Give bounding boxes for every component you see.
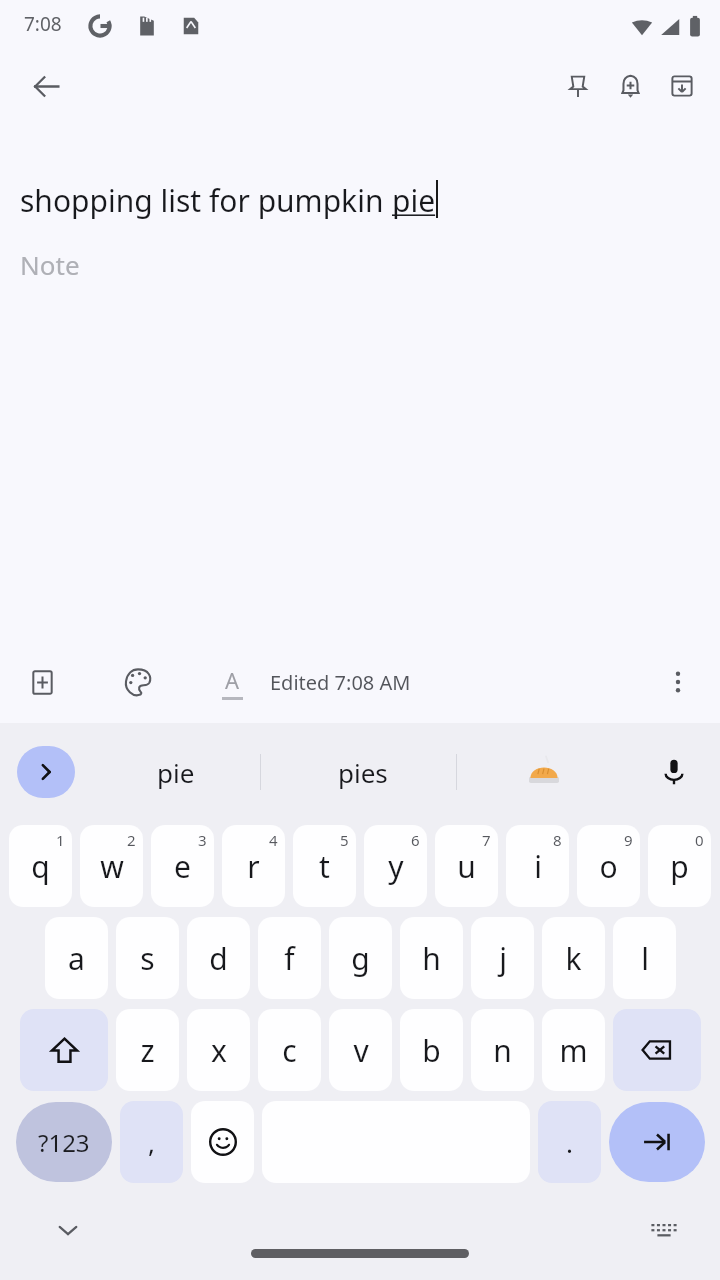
staticText: 2 <box>127 830 136 850</box>
button[interactable]: Emoji <box>191 1101 254 1183</box>
button[interactable]: f <box>258 917 321 999</box>
button[interactable]: Pin note <box>552 60 604 112</box>
staticText: c <box>282 1030 297 1071</box>
staticText: w <box>100 846 124 887</box>
staticText: v <box>353 1030 369 1071</box>
staticText: pie <box>157 755 195 790</box>
staticText: y <box>388 846 404 887</box>
staticText: u <box>457 846 476 887</box>
staticText: A <box>225 665 240 695</box>
button[interactable]: Back <box>22 62 70 110</box>
staticText: 7:08 <box>24 11 62 37</box>
staticText: b <box>422 1030 441 1071</box>
button[interactable]: Switch keyboard <box>640 1206 688 1254</box>
button[interactable]: , <box>120 1101 183 1183</box>
button[interactable]: v <box>329 1009 392 1091</box>
staticText: d <box>209 938 228 979</box>
staticText: r <box>247 846 260 887</box>
staticText: j <box>499 938 507 979</box>
staticText: , <box>148 1125 155 1160</box>
button[interactable]: Archive <box>656 60 708 112</box>
button[interactable]: d <box>187 917 250 999</box>
button[interactable]: Pie emoji <box>474 737 614 807</box>
button[interactable]: y <box>364 825 427 907</box>
button[interactable]: pie <box>92 737 260 807</box>
staticText: Edited 7:08 AM <box>270 669 411 696</box>
staticText: f <box>284 938 295 979</box>
button[interactable]: a <box>45 917 108 999</box>
staticText: 5 <box>340 830 349 850</box>
staticText: x <box>211 1030 227 1071</box>
staticText: l <box>641 938 649 979</box>
staticText: 1 <box>56 830 65 850</box>
button[interactable]: Add <box>14 654 70 710</box>
staticText: q <box>31 846 50 887</box>
button[interactable]: h <box>400 917 463 999</box>
button[interactable]: More suggestions <box>17 746 75 798</box>
button[interactable]: g <box>329 917 392 999</box>
staticText: s <box>140 938 155 979</box>
staticText: n <box>493 1030 512 1071</box>
staticText: 8 <box>553 830 562 850</box>
staticText: . <box>566 1125 573 1160</box>
staticText: g <box>351 938 370 979</box>
staticText: m <box>559 1030 588 1071</box>
staticText: Note <box>20 247 80 282</box>
button[interactable]: n <box>471 1009 534 1091</box>
button[interactable]: m <box>542 1009 605 1091</box>
button[interactable]: z <box>116 1009 179 1091</box>
button[interactable]: s <box>116 917 179 999</box>
button[interactable]: Shift <box>20 1009 108 1091</box>
button[interactable]: x <box>187 1009 250 1091</box>
button[interactable]: Hide keyboard <box>44 1206 92 1254</box>
button[interactable]: More options <box>652 656 704 708</box>
button[interactable]: Enter <box>609 1102 705 1182</box>
staticText: 4 <box>269 830 278 850</box>
staticText: e <box>174 846 191 887</box>
staticText: z <box>140 1030 155 1071</box>
button[interactable]: Change color <box>110 654 166 710</box>
button[interactable]: ?123 <box>16 1102 112 1182</box>
button[interactable]: Voice input <box>646 744 702 800</box>
staticText: pie <box>392 180 436 221</box>
staticText: o <box>599 846 618 887</box>
staticText: pies <box>338 755 388 790</box>
staticText: a <box>68 938 85 979</box>
button[interactable]: . <box>538 1101 601 1183</box>
staticText: t <box>319 846 330 887</box>
staticText: h <box>422 938 441 979</box>
button[interactable]: u <box>435 825 498 907</box>
staticText: i <box>534 846 542 887</box>
staticText: 0 <box>695 830 704 850</box>
button[interactable]: t <box>293 825 356 907</box>
staticText: p <box>670 846 689 887</box>
staticText: 6 <box>411 830 420 850</box>
staticText: ?123 <box>38 1126 90 1159</box>
button[interactable]: o <box>577 825 640 907</box>
button[interactable]: b <box>400 1009 463 1091</box>
staticText: 3 <box>198 830 207 850</box>
button[interactable]: r <box>222 825 285 907</box>
staticText: shopping list for pumpkin <box>20 180 392 221</box>
staticText: k <box>565 938 582 979</box>
staticText: 9 <box>624 830 633 850</box>
button[interactable]: p <box>648 825 711 907</box>
button[interactable]: i <box>506 825 569 907</box>
button[interactable]: q <box>9 825 72 907</box>
button[interactable]: Add reminder <box>604 60 656 112</box>
button[interactable]: k <box>542 917 605 999</box>
button[interactable]: l <box>613 917 676 999</box>
button[interactable]: w <box>80 825 143 907</box>
button[interactable]: e <box>151 825 214 907</box>
staticText: 7 <box>482 830 491 850</box>
button[interactable]: pies <box>275 737 451 807</box>
button[interactable]: c <box>258 1009 321 1091</box>
button[interactable]: j <box>471 917 534 999</box>
button[interactable]: Backspace <box>613 1009 701 1091</box>
button[interactable]: Formatting options <box>206 656 258 708</box>
